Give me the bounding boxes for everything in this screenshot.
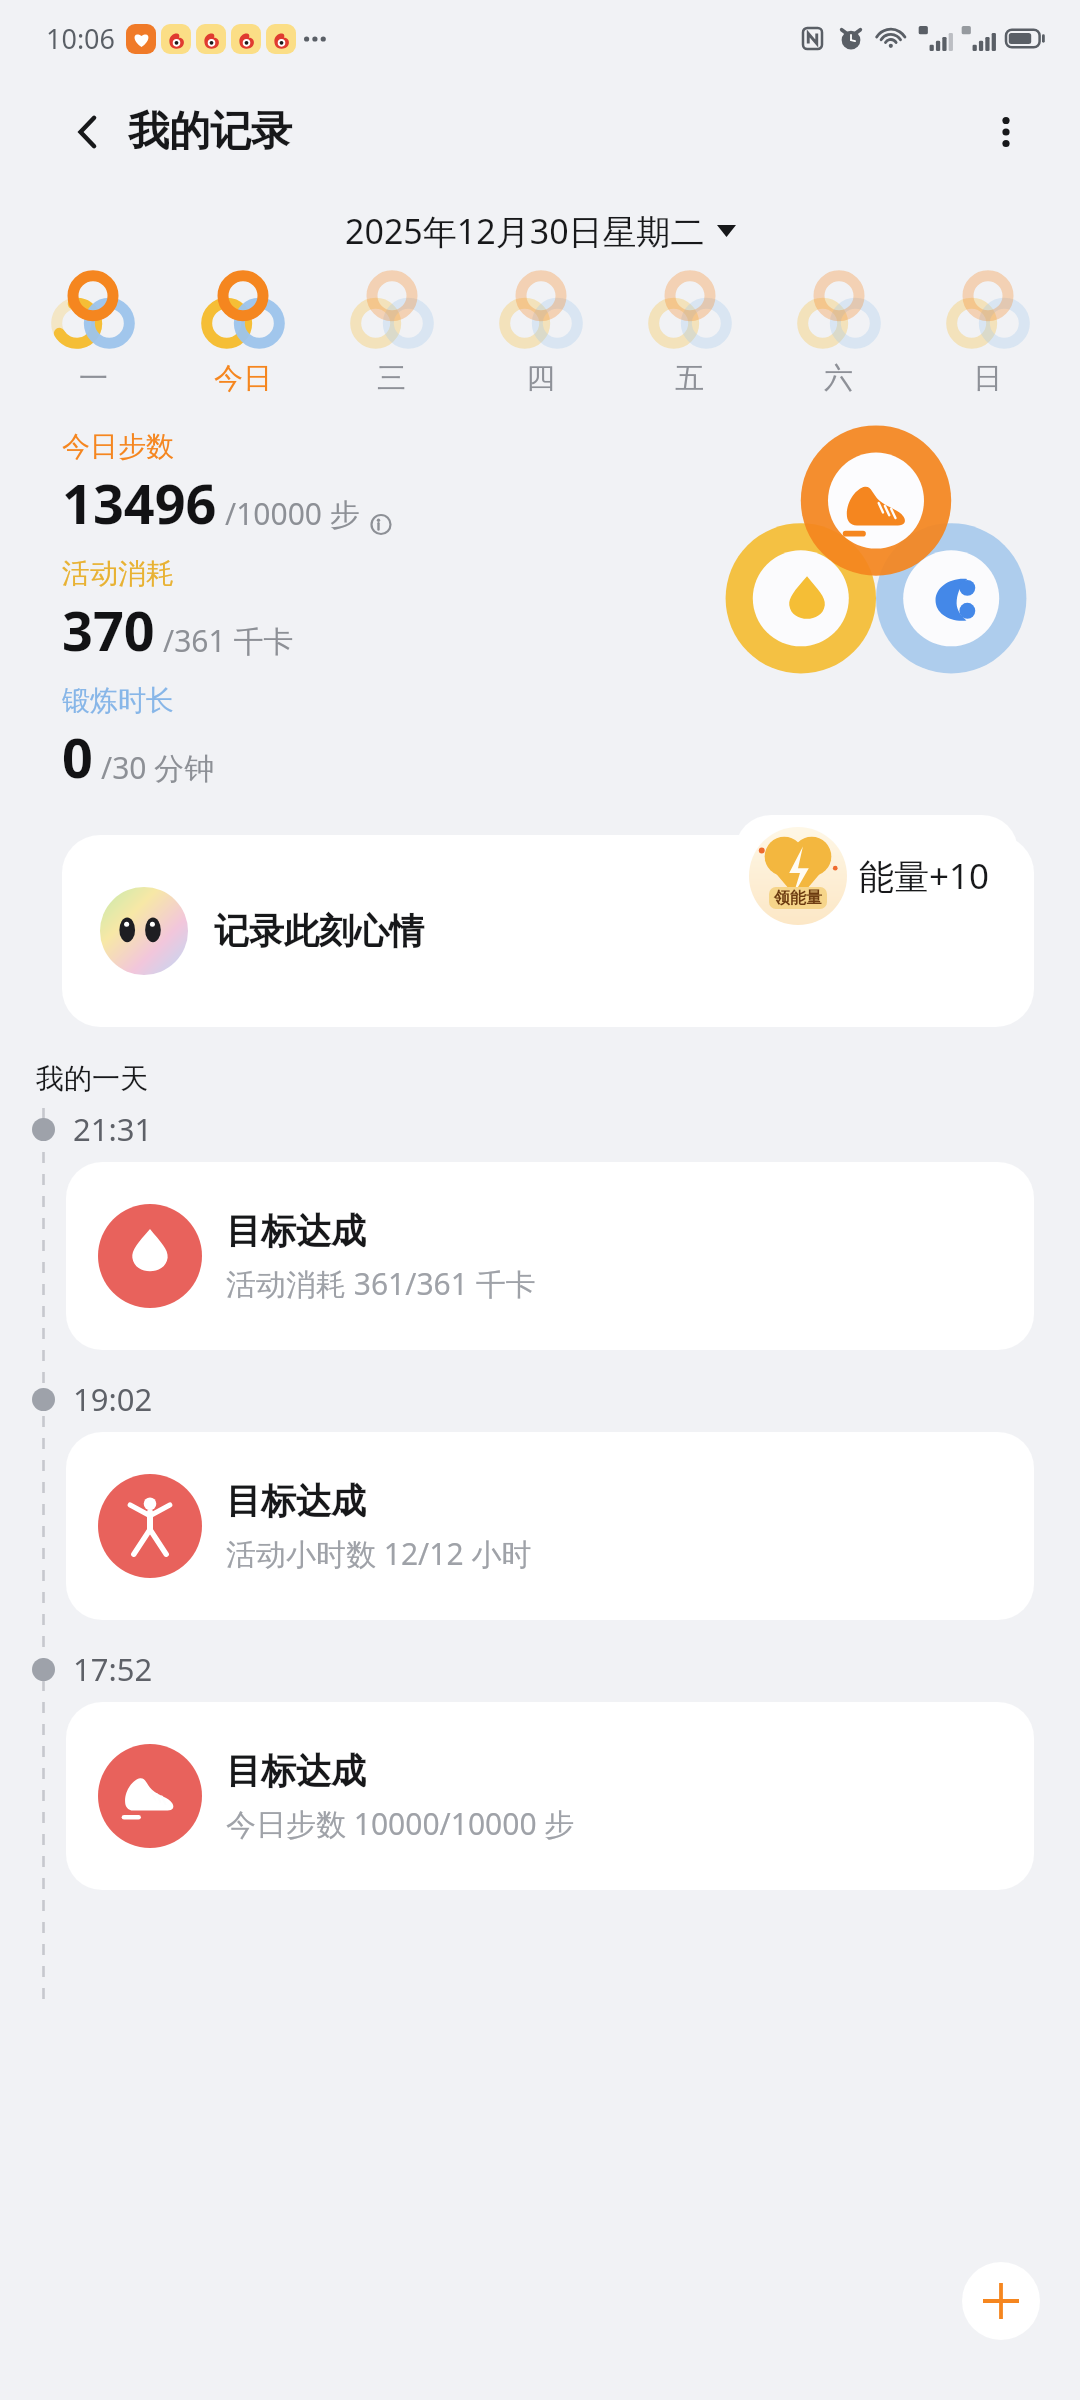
button[interactable]: More options	[976, 102, 1036, 162]
staticText: 六	[824, 360, 853, 397]
button[interactable]: 三	[317, 270, 466, 397]
staticText: 锻炼时长	[62, 683, 174, 718]
staticText: 四	[526, 360, 555, 397]
staticText: /361 千卡	[163, 620, 294, 661]
staticText: 今日	[214, 360, 272, 397]
staticText: 一	[79, 360, 108, 397]
staticText: 活动消耗	[62, 556, 174, 591]
button[interactable]: 五	[615, 270, 764, 397]
staticText: 我的记录	[128, 106, 292, 158]
staticText: 2025年12月30日星期二	[345, 208, 705, 254]
staticText: 五	[675, 360, 704, 397]
button[interactable]: 六	[764, 270, 913, 397]
staticText: 活动消耗 361/361 千卡	[226, 1263, 536, 1304]
button[interactable]: Add record	[962, 2262, 1040, 2340]
staticText: 19:02	[73, 1378, 153, 1420]
button[interactable]: 目标达成	[66, 1162, 1034, 1350]
staticText: /10000 步	[225, 493, 360, 534]
staticText: 0	[62, 720, 93, 794]
button[interactable]: Back	[58, 102, 118, 162]
button[interactable]: 记录此刻心情	[62, 835, 1034, 1027]
staticText: 目标达成	[226, 1749, 366, 1793]
button[interactable]: 领能量	[735, 815, 1018, 937]
staticText: 能量+10	[859, 852, 990, 900]
staticText: 今日步数	[62, 429, 174, 464]
staticText: 日	[973, 360, 1002, 397]
button[interactable]: 目标达成	[66, 1702, 1034, 1890]
staticText: 目标达成	[226, 1479, 366, 1523]
button[interactable]: 日	[913, 270, 1062, 397]
staticText: /30 分钟	[101, 747, 215, 788]
staticText: 目标达成	[226, 1209, 366, 1253]
staticText: 三	[377, 360, 406, 397]
button[interactable]: 一	[18, 270, 168, 397]
button[interactable]: 目标达成	[66, 1432, 1034, 1620]
staticText: 领能量	[774, 888, 822, 908]
staticText: 活动小时数 12/12 小时	[226, 1533, 532, 1574]
staticText: 17:52	[73, 1648, 153, 1690]
button[interactable]: 四	[466, 270, 615, 397]
staticText: 13496	[62, 466, 217, 540]
staticText: 21:31	[73, 1108, 153, 1150]
button[interactable]: 2025年12月30日星期二	[0, 208, 1080, 254]
staticText: 今日步数 10000/10000 步	[226, 1803, 575, 1844]
staticText: 10:06	[46, 20, 116, 57]
staticText: 370	[62, 593, 155, 667]
button[interactable]: 今日	[168, 270, 317, 397]
staticText: 我的一天	[36, 1061, 148, 1096]
staticText: 记录此刻心情	[214, 909, 424, 953]
